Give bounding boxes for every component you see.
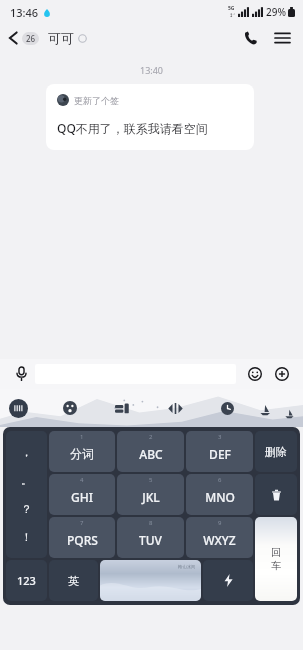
staticText: 13:46	[10, 5, 39, 20]
staticText: ABC	[139, 446, 163, 462]
button[interactable]: More	[272, 364, 292, 384]
staticText: TUV	[139, 532, 162, 548]
button[interactable]: 7	[49, 517, 115, 558]
button[interactable]: 8	[117, 517, 184, 558]
staticText: 3	[218, 433, 222, 441]
staticText: ？	[21, 502, 32, 516]
button[interactable]: Voice input	[11, 364, 31, 384]
staticText: 。	[21, 473, 32, 487]
button[interactable]: ，	[6, 431, 47, 558]
button[interactable]: 9	[186, 517, 253, 558]
staticText: QQ不用了，联系我请看空间	[57, 120, 208, 136]
staticText: 6	[218, 476, 222, 484]
button[interactable]: Split keyboard	[164, 397, 186, 419]
button[interactable]: 更新了个签	[46, 84, 254, 150]
staticText: 2	[149, 433, 153, 441]
button[interactable]: 2	[117, 431, 184, 472]
button[interactable]: Stickers	[112, 397, 134, 419]
staticText: JKL	[142, 489, 160, 505]
staticText: GHI	[71, 489, 93, 505]
staticText: 更新了个签	[74, 95, 119, 106]
button[interactable]: Keyboard theme	[9, 399, 28, 418]
staticText: 4	[80, 476, 84, 484]
staticText: PQRS	[67, 532, 98, 548]
staticText: 1	[80, 433, 84, 441]
staticText: 英	[68, 574, 79, 588]
button[interactable]: Emoticons	[59, 397, 81, 419]
staticText: WXYZ	[203, 532, 236, 548]
button[interactable]: Quick input	[203, 560, 253, 601]
button[interactable]: 6	[186, 474, 253, 515]
button[interactable]: Call	[240, 27, 262, 49]
button[interactable]: Space	[100, 560, 201, 601]
staticText: 删除	[265, 445, 287, 459]
staticText: 8	[149, 519, 153, 527]
other: Back	[9, 31, 18, 45]
button[interactable]: 5	[117, 474, 184, 515]
staticText: 13:40	[140, 64, 164, 76]
staticText: 26	[26, 33, 36, 44]
button[interactable]: Back	[7, 28, 41, 48]
button[interactable]: 回	[255, 517, 297, 601]
staticText: 分词	[70, 446, 94, 461]
staticText: 29%	[266, 5, 286, 19]
staticText: ↕⁺	[229, 12, 235, 19]
button[interactable]: Emoji	[245, 364, 265, 384]
button[interactable]: 3	[186, 431, 253, 472]
staticText: ！	[21, 530, 32, 544]
staticText: 梅·山水间	[178, 564, 196, 569]
staticText: 7	[80, 519, 84, 527]
staticText: 5	[149, 476, 153, 484]
button[interactable]: Clear	[255, 474, 297, 515]
staticText: 可可	[48, 30, 74, 46]
staticText: MNO	[205, 489, 235, 505]
button[interactable]: Menu	[271, 27, 293, 49]
staticText: DEF	[209, 446, 231, 462]
staticText: 9	[218, 519, 222, 527]
button[interactable]: 英	[49, 560, 98, 601]
button[interactable]: Recent	[216, 397, 238, 419]
staticText: 车	[271, 559, 281, 572]
button[interactable]: 123	[6, 560, 47, 601]
staticText: 回	[271, 546, 281, 559]
staticText: 123	[17, 573, 36, 588]
button[interactable]: 删除	[255, 431, 297, 472]
staticText: ，	[21, 445, 32, 459]
button[interactable]: 4	[49, 474, 115, 515]
staticText: 5G	[228, 5, 235, 12]
button[interactable]: 1	[49, 431, 115, 472]
